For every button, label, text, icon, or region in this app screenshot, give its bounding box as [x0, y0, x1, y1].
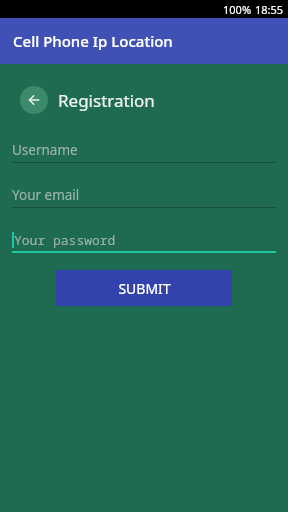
button[interactable]: Your password: [12, 227, 276, 253]
button[interactable]: Back: [20, 86, 48, 114]
staticText: Username: [12, 141, 78, 159]
button[interactable]: SUBMIT: [56, 270, 232, 306]
staticText: Registration: [58, 89, 155, 112]
staticText: Your password: [14, 231, 116, 249]
staticText: 18:55: [255, 2, 284, 17]
staticText: Cell Phone Ip Location: [13, 31, 173, 51]
staticText: 100%: [223, 2, 252, 17]
staticText: SUBMIT: [118, 279, 171, 298]
staticText: Your email: [12, 186, 80, 204]
button[interactable]: Username: [12, 137, 276, 163]
button[interactable]: Your email: [12, 182, 276, 208]
